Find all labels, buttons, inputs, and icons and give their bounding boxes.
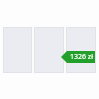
button[interactable] <box>3 27 96 73</box>
staticText: 1326 zł <box>70 52 93 62</box>
button[interactable]: Amount 1326 zloty <box>61 51 95 63</box>
